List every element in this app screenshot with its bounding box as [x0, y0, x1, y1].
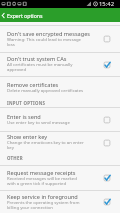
button[interactable]: Keep service in foreground — [0, 191, 120, 213]
staticText: Keep service in foreground — [7, 193, 78, 201]
button[interactable]: Request message receipts — [0, 166, 120, 191]
other: Back — [1, 12, 5, 19]
button[interactable]: Don't trust system CAs — [0, 53, 120, 77]
button[interactable]: Remove certificates — [0, 77, 120, 98]
staticText: Remove certificates — [7, 81, 59, 89]
staticText: OTHER — [7, 155, 23, 161]
staticText: Expert options — [7, 12, 43, 19]
staticText: Delete manually approved certificates — [7, 87, 84, 93]
staticText: Request message receipts — [7, 169, 76, 177]
button[interactable]: Show enter key — [0, 132, 120, 153]
staticText: Enter is send — [7, 113, 41, 121]
staticText: Use enter key to send message — [7, 119, 84, 125]
staticText: 15:42 — [99, 0, 115, 8]
staticText: Show enter key — [7, 133, 48, 141]
staticText: Received messages will be marked with a … — [7, 175, 84, 186]
staticText: INPUT OPTIONS — [7, 100, 46, 106]
staticText: Don't save encrypted messages — [7, 30, 90, 38]
staticText: All certificates must be manually approv… — [7, 61, 84, 72]
button[interactable]: Don't save encrypted messages — [0, 26, 120, 53]
button[interactable]: Enter is send — [0, 108, 120, 132]
staticText: Change the emoticons key to an enter key — [7, 139, 84, 150]
staticText: Warning: This could lead to message loss — [7, 36, 84, 47]
staticText: Don't trust system CAs — [7, 55, 67, 63]
staticText: Prevents the operating system from killi… — [7, 199, 84, 210]
button[interactable]: Back — [0, 8, 120, 22]
